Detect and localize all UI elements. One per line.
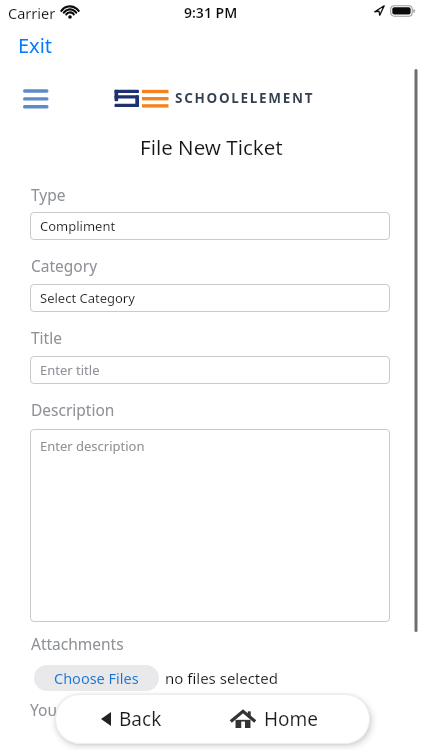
staticText: Enter description [40, 437, 145, 455]
staticText: 9:31 PM [184, 3, 238, 22]
button[interactable]: Enter title [30, 356, 390, 384]
staticText: Description [31, 399, 115, 420]
button[interactable]: Select Category [30, 284, 390, 312]
button[interactable]: Choose Files [34, 665, 159, 691]
button[interactable]: Exit [14, 28, 57, 63]
staticText: File New Ticket [140, 133, 283, 161]
staticText: Title [31, 327, 62, 348]
button[interactable]: Compliment [30, 212, 390, 240]
staticText: Home [264, 706, 319, 732]
staticText: Back [119, 706, 162, 732]
button[interactable]: Back [91, 694, 172, 744]
staticText: Carrier [8, 3, 56, 23]
staticText: Category [31, 255, 98, 276]
staticText: Exit [18, 32, 53, 59]
staticText: You [30, 699, 57, 720]
staticText: Enter title [40, 361, 100, 379]
staticText: no files selected [165, 668, 278, 688]
button[interactable] [18, 84, 52, 114]
staticText: Select Category [40, 289, 135, 307]
staticText: Compliment [40, 217, 116, 235]
staticText: Type [31, 184, 66, 205]
staticText: Attachments [31, 633, 124, 654]
staticText: Choose Files [54, 668, 139, 688]
button[interactable]: Home [222, 694, 329, 744]
button[interactable]: Enter description [30, 429, 390, 622]
staticText: SCHOOLELEMENT [175, 89, 315, 107]
